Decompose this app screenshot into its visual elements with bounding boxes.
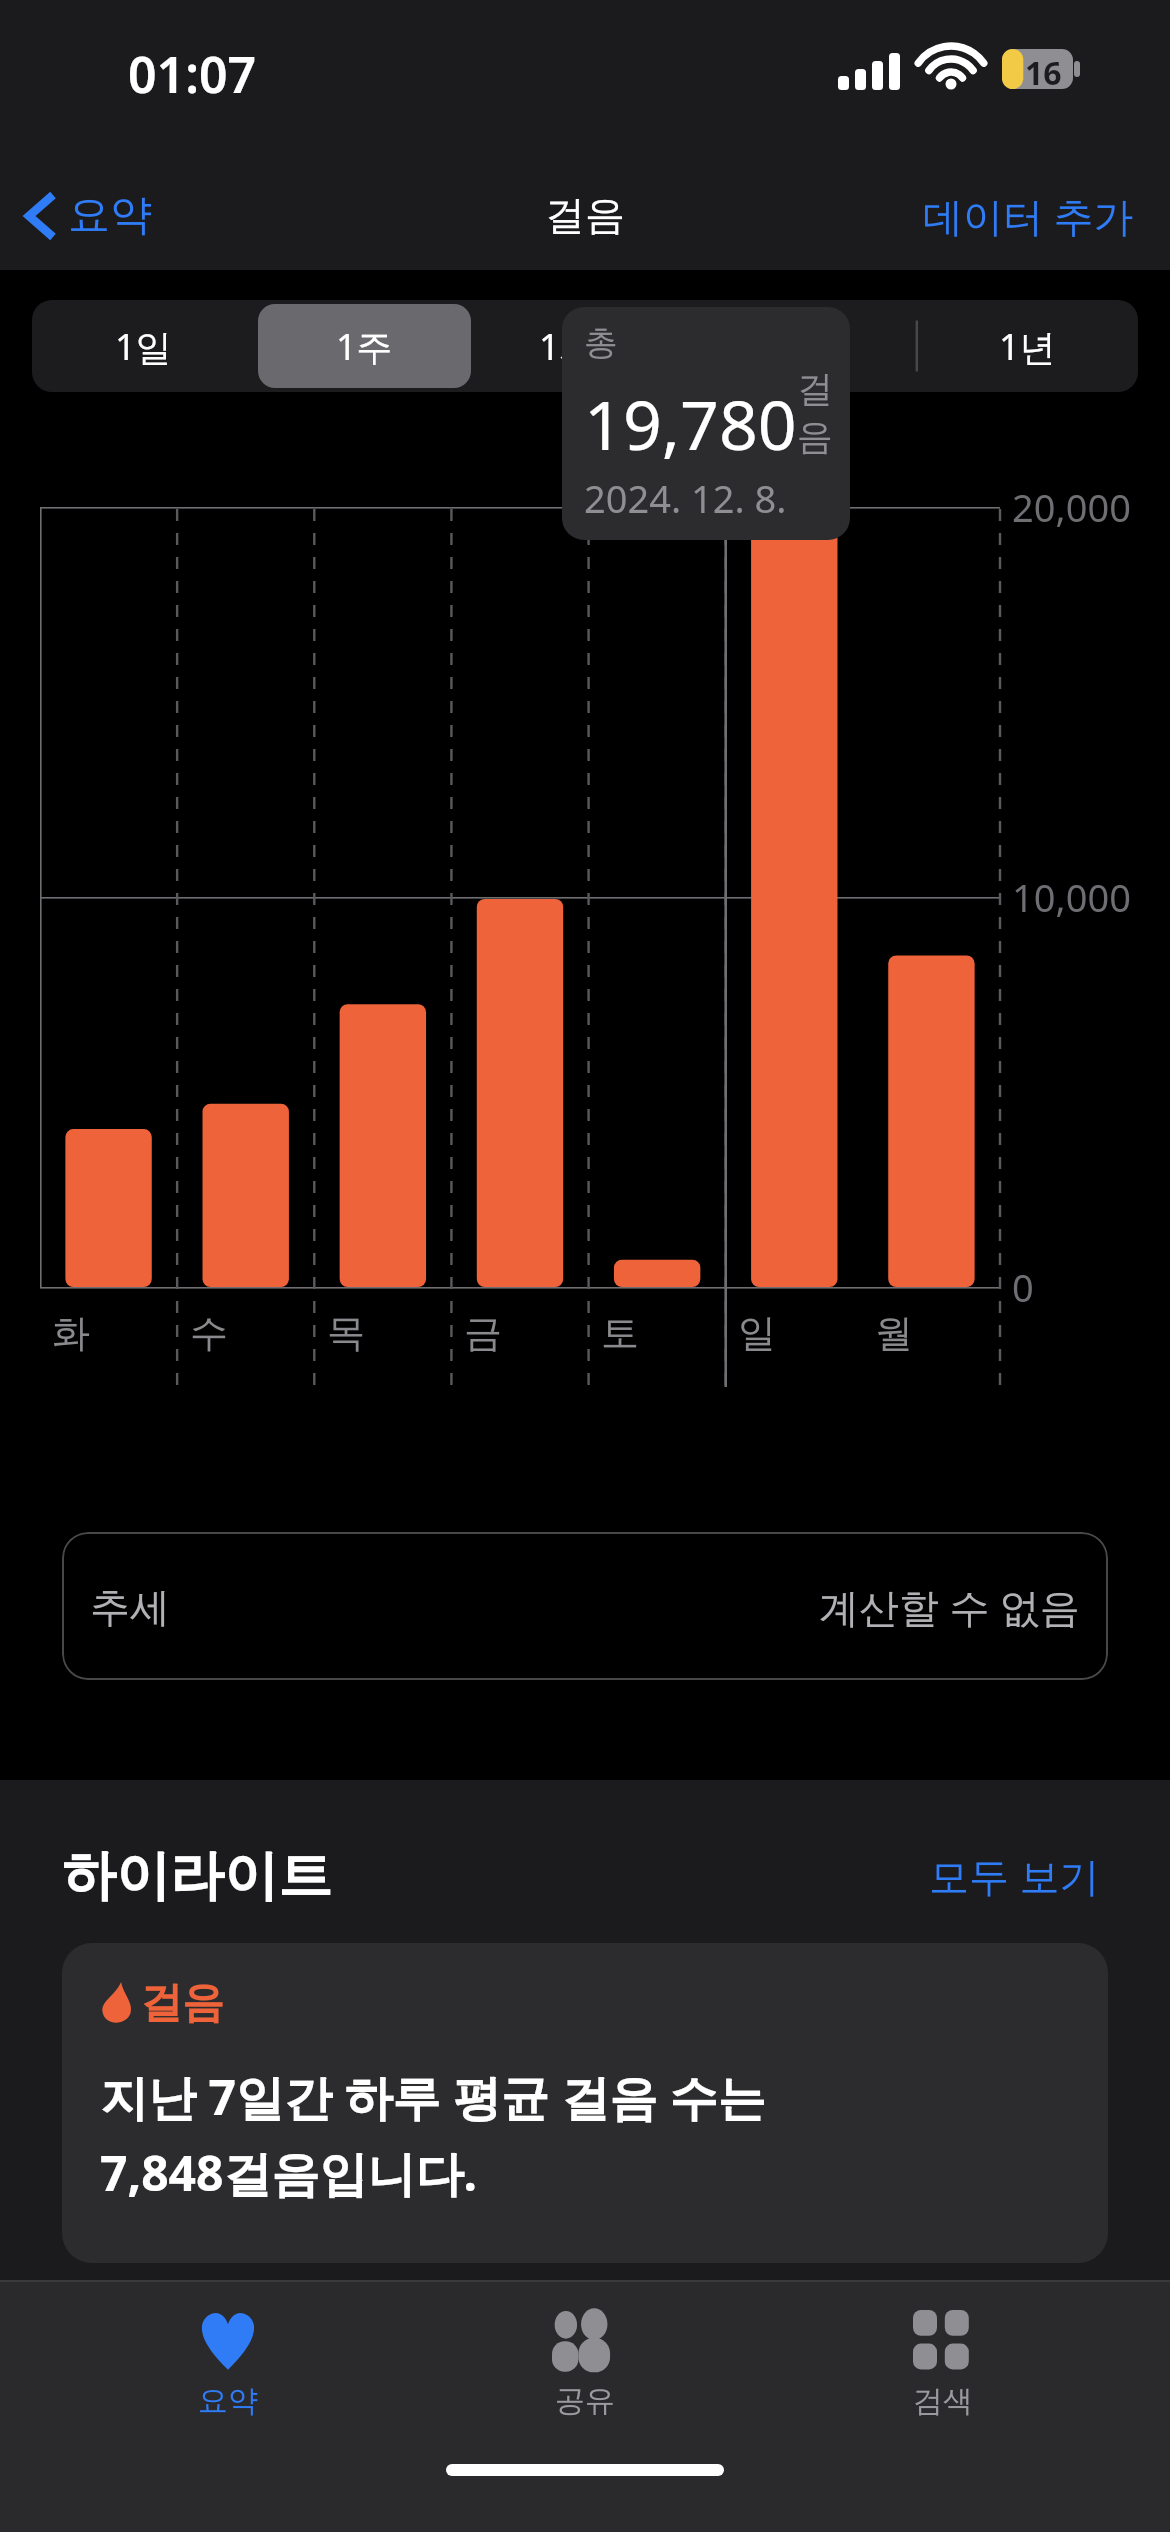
staticText: 1개월 [539, 322, 632, 371]
staticText: 16 [1025, 51, 1062, 95]
button[interactable]: 요약 [0, 181, 170, 250]
staticText: 모두 보기 [929, 1848, 1100, 1903]
staticText: 걸음 [797, 366, 828, 460]
staticText: 일 [738, 1309, 776, 1357]
staticText: 공유 [555, 2382, 615, 2420]
staticText: 총 [584, 321, 618, 364]
button[interactable]: 6개월 [700, 304, 913, 388]
button[interactable]: 1주 [258, 304, 471, 388]
staticText: 요약 [198, 2382, 258, 2420]
staticText: 토 [601, 1309, 639, 1357]
staticText: 1일 [115, 322, 172, 371]
staticText: 월 [875, 1309, 913, 1357]
staticText: 지난 7일간 하루 평균 걸음 수는 [100, 2064, 766, 2130]
staticText: 계산할 수 없음 [819, 1579, 1080, 1634]
button[interactable]: 요약 [98, 2282, 358, 2452]
staticText: 금 [464, 1309, 502, 1357]
button[interactable]: 1일 [36, 304, 250, 388]
button[interactable]: 데이터 추가 [887, 178, 1170, 253]
staticText: 10,000 [1012, 871, 1131, 923]
staticText: 하이라이트 [62, 1842, 332, 1910]
staticText: 1주 [336, 322, 393, 371]
staticText: 01:07 [128, 40, 257, 108]
button[interactable]: 추세 [62, 1532, 1108, 1680]
staticText: 2024. 12. 8. [584, 472, 787, 524]
button[interactable]: 모두 보기 [921, 1840, 1108, 1911]
button[interactable]: 1개월 [479, 304, 692, 388]
staticText: 걸음 [140, 1977, 224, 2030]
staticText: 검색 [913, 2382, 973, 2420]
staticText: 수 [190, 1309, 228, 1357]
button[interactable]: 1년 [921, 304, 1134, 388]
staticText: 20,000 [1012, 481, 1131, 533]
staticText: 0 [1012, 1261, 1034, 1313]
staticText: 19,780 [584, 377, 797, 470]
staticText: 1년 [999, 322, 1056, 371]
staticText: 목 [327, 1309, 365, 1357]
staticText: 요약 [68, 189, 152, 242]
staticText: 걸음 [545, 190, 625, 240]
button[interactable]: 걸음 [62, 1943, 1108, 2263]
staticText: 화 [52, 1309, 90, 1357]
staticText: 추세 [90, 1582, 170, 1632]
button[interactable]: 총 [562, 307, 850, 540]
button[interactable]: 공유 [455, 2282, 715, 2452]
staticText: 데이터 추가 [923, 188, 1134, 243]
button[interactable]: 검색 [813, 2282, 1073, 2452]
staticText: 7,848걸음입니다. [100, 2140, 477, 2206]
